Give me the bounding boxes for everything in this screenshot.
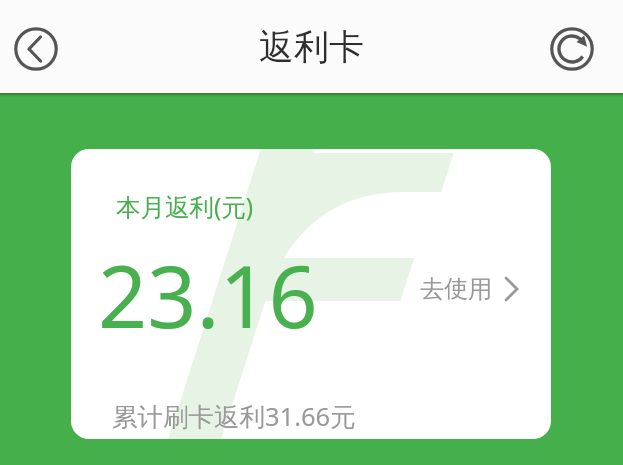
button[interactable] — [550, 27, 594, 71]
staticText: 去使用 — [420, 274, 492, 304]
staticText: 累计刷卡返利31.66元 — [112, 399, 356, 434]
button[interactable] — [14, 27, 58, 71]
button[interactable]: 去使用 — [411, 267, 526, 311]
staticText: 本月返利(元) — [116, 190, 254, 223]
staticText: 23.16 — [98, 236, 318, 353]
staticText: 返利卡 — [259, 25, 364, 69]
